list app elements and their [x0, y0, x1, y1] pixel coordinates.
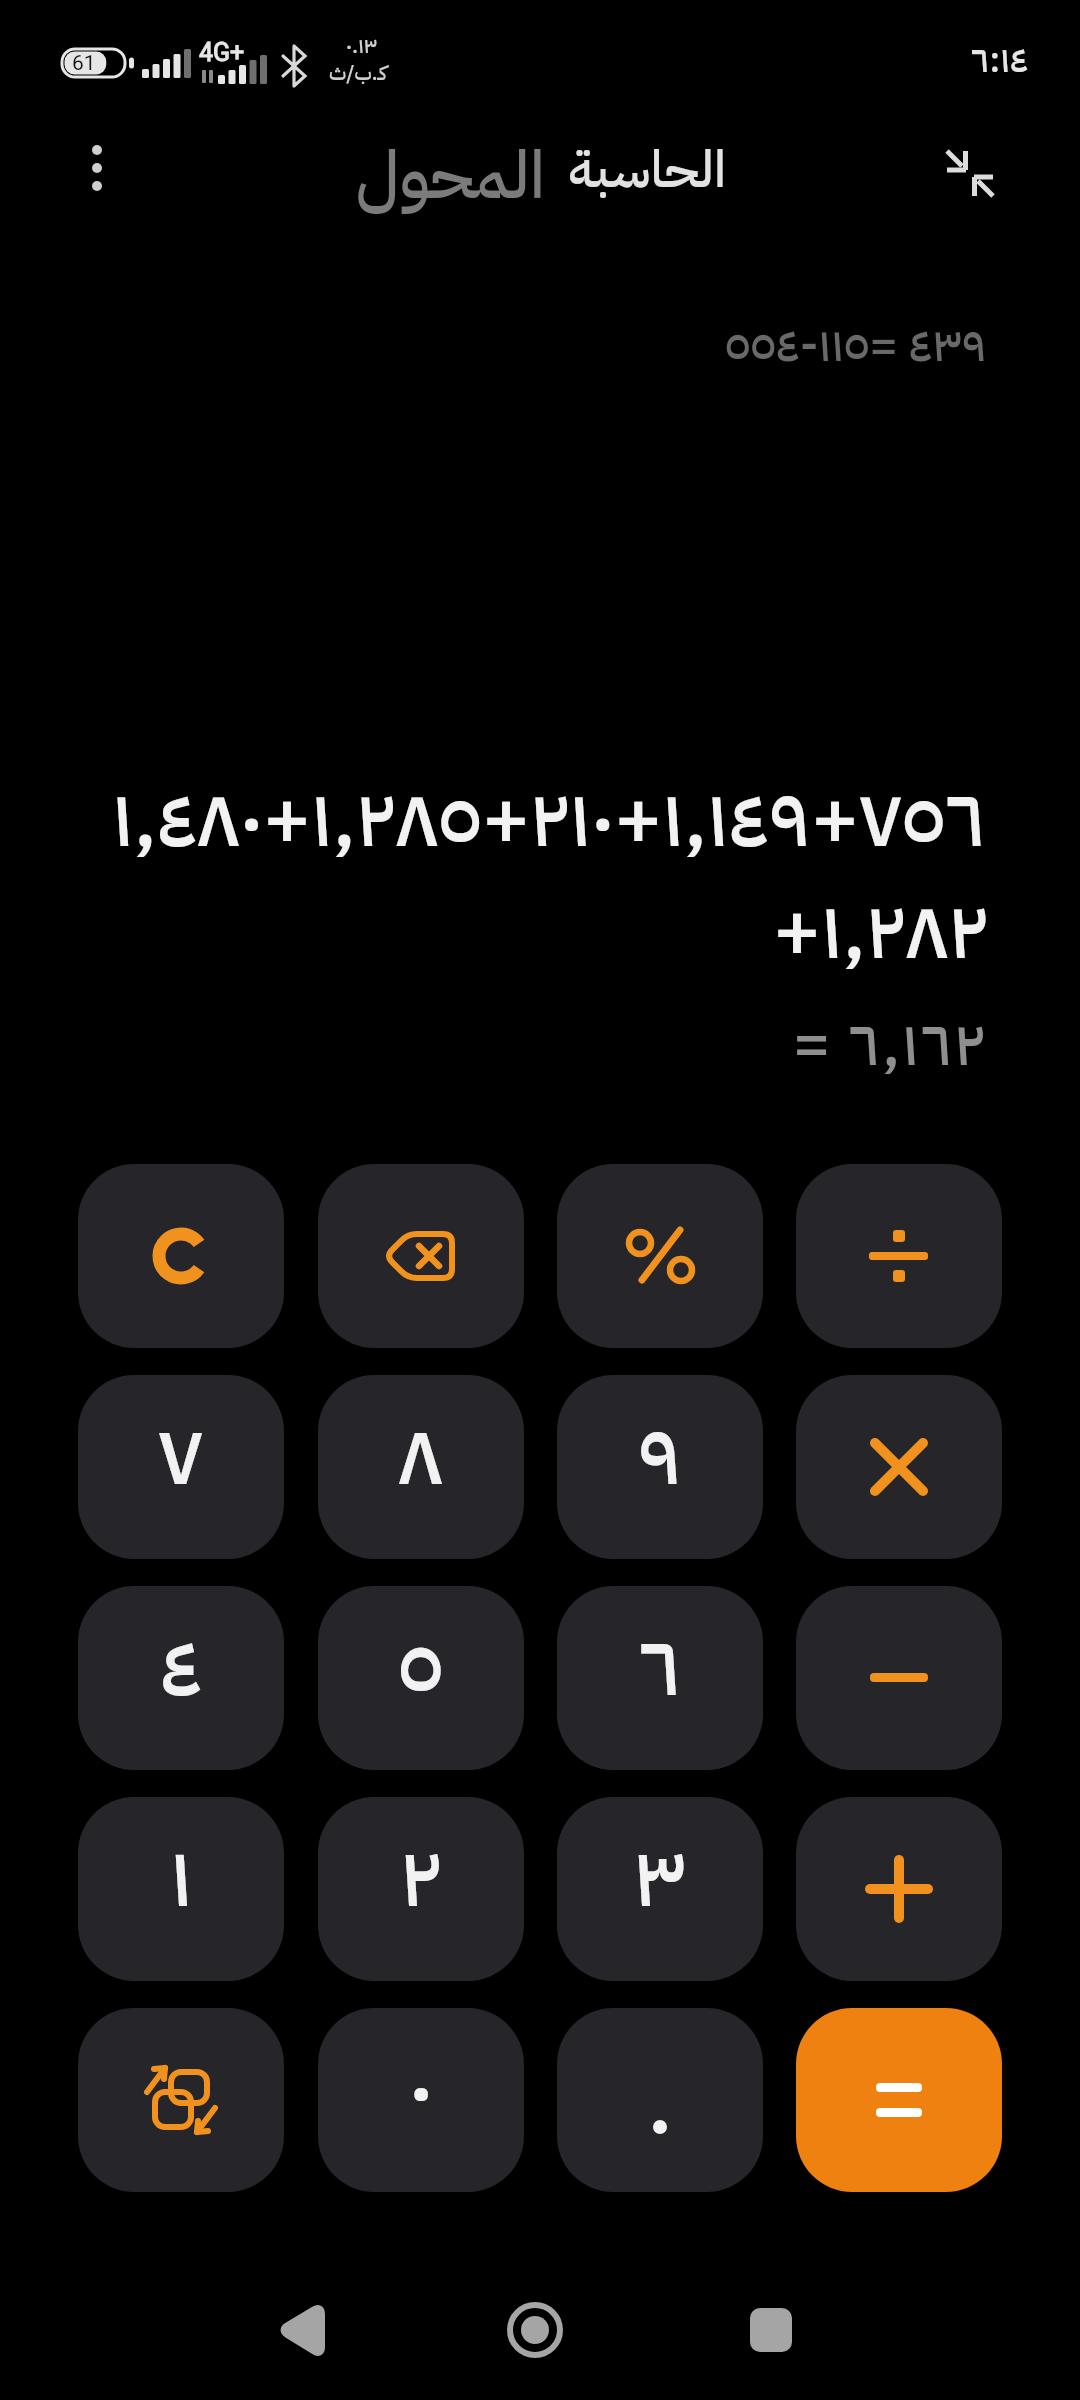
staticText: ٧٥٦+١,١٤٩+٢١٠+١,٢٨٥+١,٤٨٠ — [112, 759, 986, 879]
staticText: المحول — [355, 126, 545, 216]
button[interactable] — [930, 135, 1010, 215]
button[interactable]: ١ — [78, 1797, 284, 1981]
button[interactable]: ٢ — [318, 1797, 524, 1981]
staticText: +١,٢٨٢ — [773, 871, 989, 991]
staticText: الحاسبة — [568, 131, 726, 209]
button[interactable] — [796, 1375, 1002, 1559]
staticText: ٧ — [158, 1393, 204, 1519]
button[interactable]: ٠ — [318, 2008, 524, 2192]
button[interactable] — [796, 1797, 1002, 1981]
staticText: ٨ — [398, 1393, 444, 1519]
staticText: ٩ — [638, 1393, 683, 1519]
button[interactable] — [557, 1164, 763, 1348]
staticText: ١ — [170, 1815, 193, 1941]
button[interactable]: ٦ — [557, 1586, 763, 1770]
button[interactable] — [796, 2008, 1002, 2192]
staticText: ٠ — [409, 2026, 434, 2152]
button[interactable] — [318, 1164, 524, 1348]
staticText: 4G+ — [199, 38, 245, 67]
staticText: ٤٣٩ =١١٥-٥٥٤ — [725, 310, 987, 381]
button[interactable]: ٧ — [78, 1375, 284, 1559]
button[interactable] — [557, 2008, 763, 2192]
staticText: ٤ — [160, 1604, 203, 1730]
button[interactable] — [70, 130, 126, 206]
button[interactable]: ٩ — [557, 1375, 763, 1559]
button[interactable]: ٤ — [78, 1586, 284, 1770]
button[interactable] — [796, 1586, 1002, 1770]
staticText: ٠.١٣ — [346, 30, 378, 62]
staticText: ٦:١٤ — [971, 33, 1029, 87]
button[interactable] — [726, 2285, 816, 2375]
button[interactable]: ٥ — [318, 1586, 524, 1770]
staticText: كـ.ب/ث — [329, 58, 387, 88]
staticText: = ٦,١٦٢ — [793, 998, 987, 1091]
staticText: 61 — [72, 51, 96, 76]
staticText: ٥ — [398, 1604, 444, 1730]
button[interactable] — [78, 1164, 284, 1348]
staticText: ٣ — [633, 1815, 687, 1941]
button[interactable]: المحول — [340, 126, 560, 216]
button[interactable] — [260, 2285, 350, 2375]
button[interactable]: الحاسبة — [552, 125, 742, 215]
staticText: ٢ — [400, 1815, 442, 1941]
button[interactable]: ٣ — [557, 1797, 763, 1981]
button[interactable]: ٨ — [318, 1375, 524, 1559]
button[interactable] — [796, 1164, 1002, 1348]
staticText: ٦ — [639, 1604, 682, 1730]
button[interactable] — [78, 2008, 284, 2192]
button[interactable] — [490, 2285, 580, 2375]
